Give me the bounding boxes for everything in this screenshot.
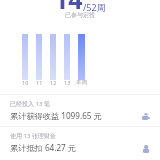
button[interactable]: 使用 13 张理财金 — [0, 127, 160, 160]
staticText: 累计获得收益 1099.65 元 — [10, 110, 102, 121]
staticText: 11 — [36, 79, 43, 86]
staticText: 累计抵扣 64.27 元 — [10, 142, 77, 153]
other: Savings — [142, 113, 150, 121]
staticText: 12 — [50, 79, 57, 86]
staticText: 13 — [64, 79, 71, 86]
button[interactable]: 已经投入 13 笔 — [0, 95, 160, 126]
staticText: /52周 — [83, 1, 106, 13]
staticText: 已经投入 13 笔 — [10, 100, 50, 108]
staticText: 10 — [22, 79, 29, 86]
staticText: 本周 — [76, 79, 87, 86]
staticText: 使用 13 张理财金 — [10, 132, 56, 140]
staticText: 14 — [54, 0, 83, 16]
other: Coupon — [142, 145, 150, 153]
staticText: 已参与定投 — [65, 11, 95, 19]
